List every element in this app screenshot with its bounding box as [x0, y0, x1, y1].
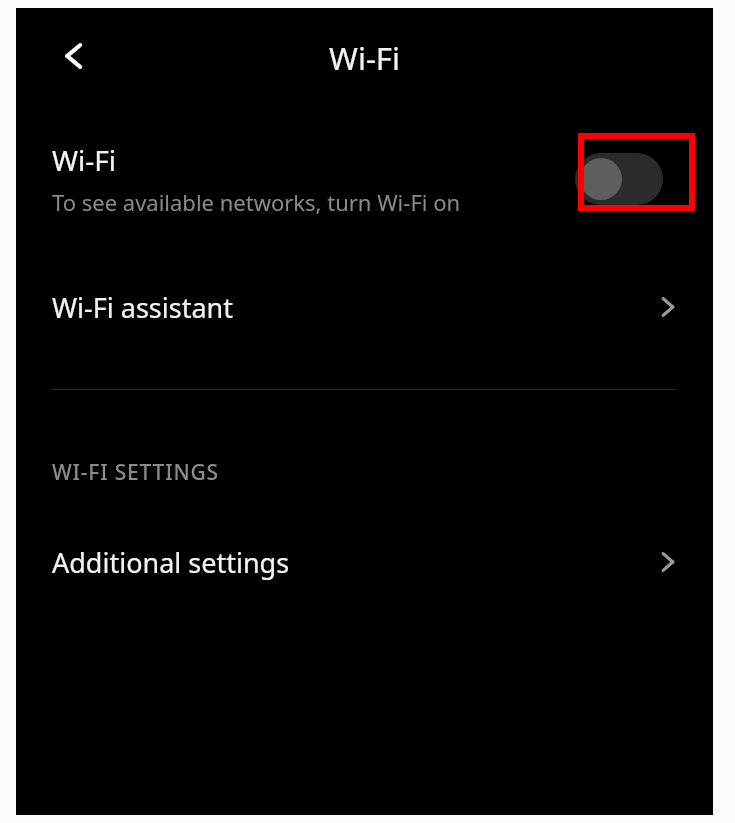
staticText: Wi-Fi assistant [52, 289, 653, 326]
staticText: WI-FI SETTINGS [52, 458, 219, 487]
staticText: Wi-Fi [16, 37, 713, 79]
button[interactable]: Wi-Fi [16, 124, 713, 234]
staticText: Wi-Fi [52, 141, 117, 179]
staticText: To see available networks, turn Wi-Fi on [52, 187, 461, 217]
staticText: Additional settings [52, 544, 653, 581]
button[interactable]: Wi-Fi toggle, off [575, 153, 663, 205]
button[interactable]: Additional settings [16, 527, 713, 597]
button[interactable]: Wi-Fi assistant [16, 272, 713, 342]
button[interactable]: Back [44, 26, 104, 86]
